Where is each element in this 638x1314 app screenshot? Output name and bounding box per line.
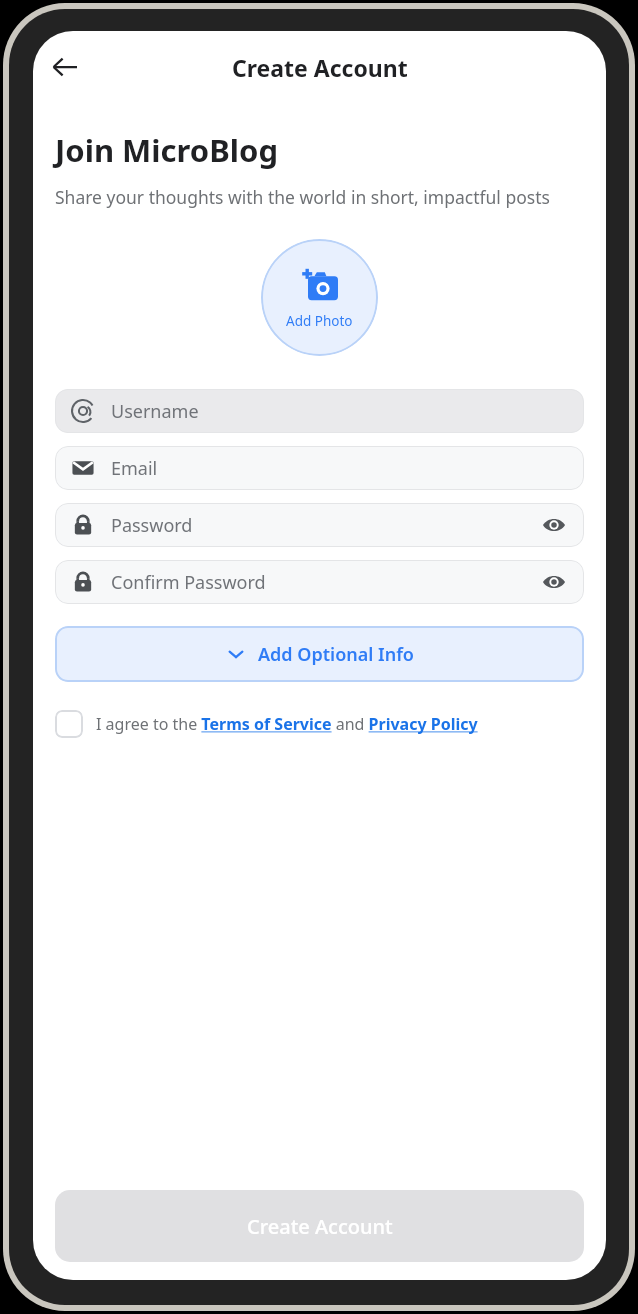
button[interactable]: Username: [55, 389, 584, 433]
staticText: Email: [111, 456, 568, 481]
staticText: Confirm Password: [111, 570, 540, 595]
staticText: Add Optional Info: [258, 642, 414, 667]
button[interactable]: Show password: [540, 568, 568, 596]
button[interactable]: Password: [55, 503, 584, 547]
button[interactable]: Add Optional Info: [55, 626, 584, 682]
staticText: Join MicroBlog: [55, 129, 279, 171]
staticText: Username: [111, 399, 568, 424]
button[interactable]: Create Account: [55, 1190, 584, 1262]
staticText: Add Photo: [286, 312, 353, 330]
staticText: Create Account: [247, 1213, 393, 1240]
staticText: Password: [111, 513, 540, 538]
button[interactable]: Confirm Password: [55, 560, 584, 604]
button[interactable]: Back: [41, 43, 89, 91]
staticText: Share your thoughts with the world in sh…: [55, 185, 550, 209]
button[interactable]: Show password: [540, 511, 568, 539]
button[interactable]: Email: [55, 446, 584, 490]
button[interactable]: Add Photo: [261, 239, 378, 356]
staticText: Create Account: [232, 52, 408, 83]
staticText: I agree to the Terms of Service and Priv…: [96, 713, 478, 735]
button[interactable]: I agree to the Terms of Service and Priv…: [55, 710, 584, 738]
